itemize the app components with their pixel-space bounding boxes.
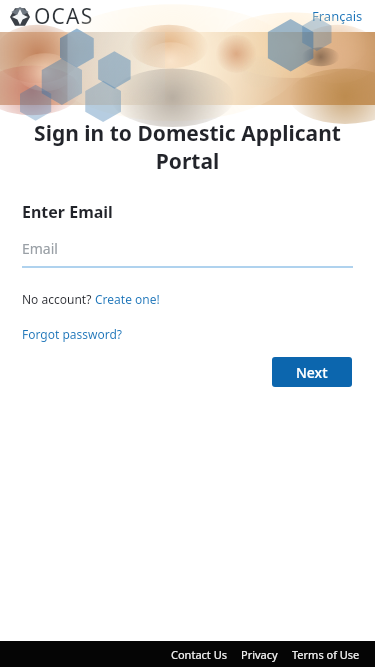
button[interactable]: Contact Us bbox=[164, 643, 234, 666]
button[interactable]: Next bbox=[272, 357, 352, 387]
staticText: Terms of Use bbox=[292, 647, 360, 662]
staticText: Sign in to Domestic Applicant Portal bbox=[22, 119, 353, 175]
staticText: Forgot password? bbox=[22, 326, 123, 342]
button[interactable]: Français bbox=[300, 3, 375, 29]
button[interactable]: Terms of Use bbox=[285, 643, 367, 666]
staticText: Create one! bbox=[95, 291, 160, 307]
staticText: Enter Email bbox=[22, 201, 113, 223]
button[interactable]: Privacy bbox=[234, 643, 285, 666]
staticText: Français bbox=[312, 7, 363, 25]
staticText: Contact Us bbox=[171, 647, 227, 662]
staticText: Privacy bbox=[241, 647, 278, 662]
button[interactable]: Email bbox=[22, 239, 353, 268]
staticText: No account? bbox=[22, 291, 95, 307]
button[interactable]: Create one! bbox=[95, 291, 160, 307]
staticText: Next bbox=[296, 363, 328, 382]
staticText: OCAS bbox=[34, 2, 94, 31]
button[interactable]: OCAS home bbox=[10, 2, 94, 31]
staticText: Email bbox=[22, 239, 58, 258]
button[interactable]: Forgot password? bbox=[22, 326, 123, 342]
